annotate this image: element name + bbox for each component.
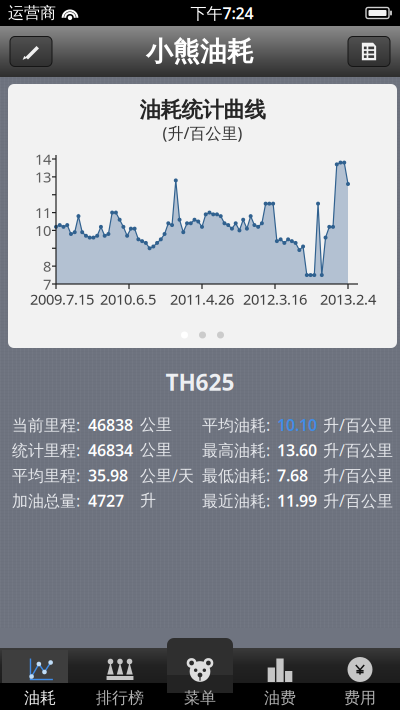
staticText: 油费: [264, 688, 296, 708]
staticText: 14: [35, 149, 51, 169]
staticText: 公里: [140, 415, 172, 435]
staticText: 下午7:24: [190, 2, 253, 24]
button[interactable]: 油费: [240, 648, 320, 710]
staticText: 平均里程:: [12, 465, 80, 486]
staticText: 菜单: [184, 688, 216, 708]
staticText: 当前里程:: [12, 414, 80, 435]
staticText: 最低油耗:: [202, 465, 270, 486]
staticText: 10: [35, 221, 51, 240]
staticText: 46834: [88, 439, 133, 460]
staticText: 公里: [140, 440, 172, 460]
staticText: 升: [140, 491, 156, 510]
staticText: 排行榜: [96, 688, 144, 708]
staticText: 公里/天: [140, 465, 194, 486]
staticText: 费用: [344, 688, 376, 708]
staticText: 最高油耗:: [202, 439, 270, 460]
staticText: 8: [43, 256, 51, 276]
staticText: 13.60: [277, 439, 317, 460]
staticText: 11.99: [277, 490, 317, 511]
staticText: 35.98: [88, 465, 128, 486]
staticText: 7: [43, 274, 51, 294]
button[interactable]: 费用: [320, 648, 400, 710]
button[interactable]: 列表: [348, 36, 390, 66]
staticText: (升/百公里): [162, 122, 242, 144]
staticText: 运营商: [8, 3, 56, 23]
staticText: 2013.2.4: [320, 289, 376, 309]
staticText: 7.68: [277, 465, 308, 486]
button[interactable]: 编辑: [10, 36, 52, 66]
staticText: 升/百公里: [323, 465, 393, 486]
staticText: 油耗: [24, 688, 56, 708]
staticText: 2009.7.15: [30, 289, 94, 309]
staticText: 2011.4.26: [170, 289, 234, 309]
staticText: 统计里程:: [12, 439, 80, 460]
staticText: 最近油耗:: [202, 490, 270, 511]
staticText: 11: [35, 203, 51, 222]
staticText: 10.10: [277, 414, 317, 435]
button[interactable]: 油耗: [0, 648, 80, 710]
staticText: 小熊油耗: [146, 35, 254, 68]
staticText: 46838: [88, 414, 133, 435]
staticText: 升/百公里: [323, 439, 393, 460]
staticText: 2012.3.16: [243, 289, 307, 309]
staticText: 升/百公里: [323, 490, 393, 511]
staticText: 4727: [88, 490, 124, 511]
staticText: 加油总量:: [12, 490, 80, 511]
button[interactable]: 排行榜: [80, 648, 160, 710]
staticText: 油耗统计曲线: [139, 97, 265, 123]
staticText: 升/百公里: [323, 414, 393, 435]
staticText: 2010.6.5: [100, 289, 156, 309]
staticText: 13: [35, 167, 51, 187]
staticText: TH625: [165, 367, 234, 397]
staticText: 平均油耗:: [202, 414, 270, 435]
button[interactable]: 菜单: [160, 648, 240, 710]
